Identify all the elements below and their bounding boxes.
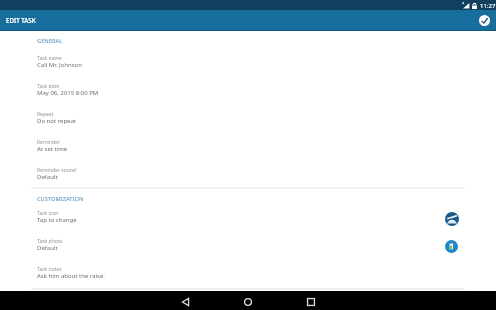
staticText: Task photo [37, 238, 63, 245]
staticText: EDIT TASK [6, 16, 36, 24]
staticText: GENERAL [37, 37, 63, 45]
staticText: Call Mr. Johnson [37, 61, 82, 69]
staticText: Task name [37, 55, 62, 62]
staticText: Tap to change [37, 216, 77, 224]
button[interactable]: Back [169, 291, 201, 310]
staticText: Reminder sound [37, 167, 76, 174]
staticText: Default [37, 244, 58, 252]
staticText: At set time [37, 145, 68, 153]
staticText: Task notes [37, 266, 62, 273]
button[interactable]: Reminder [37, 136, 465, 162]
button[interactable]: Change task icon [445, 212, 459, 226]
button[interactable]: Reminder sound [37, 164, 465, 190]
button[interactable]: Recent apps [295, 291, 327, 310]
button[interactable]: Home [232, 291, 264, 310]
staticText: Default [37, 173, 58, 181]
button[interactable]: Task notes [37, 263, 465, 289]
button[interactable]: Task date [37, 80, 465, 106]
staticText: Do not repeat [37, 117, 76, 125]
staticText: Task icon [37, 210, 59, 217]
button[interactable]: Task icon [37, 207, 465, 233]
button[interactable]: Change task photo [445, 240, 458, 253]
button[interactable]: Task name [37, 52, 465, 78]
staticText: May 06, 2015 8:00 PM [37, 89, 99, 97]
staticText: Reminder [37, 139, 60, 146]
staticText: 11:27 [480, 2, 496, 10]
staticText: Task date [37, 83, 60, 90]
staticText: Ask him about the raise. [37, 272, 105, 280]
staticText: Repeat [37, 111, 54, 118]
button[interactable]: Task photo [37, 235, 465, 261]
button[interactable]: Save task [479, 15, 490, 26]
button[interactable]: Repeat [37, 108, 465, 134]
staticText: CUSTOMIZATION [37, 195, 84, 203]
